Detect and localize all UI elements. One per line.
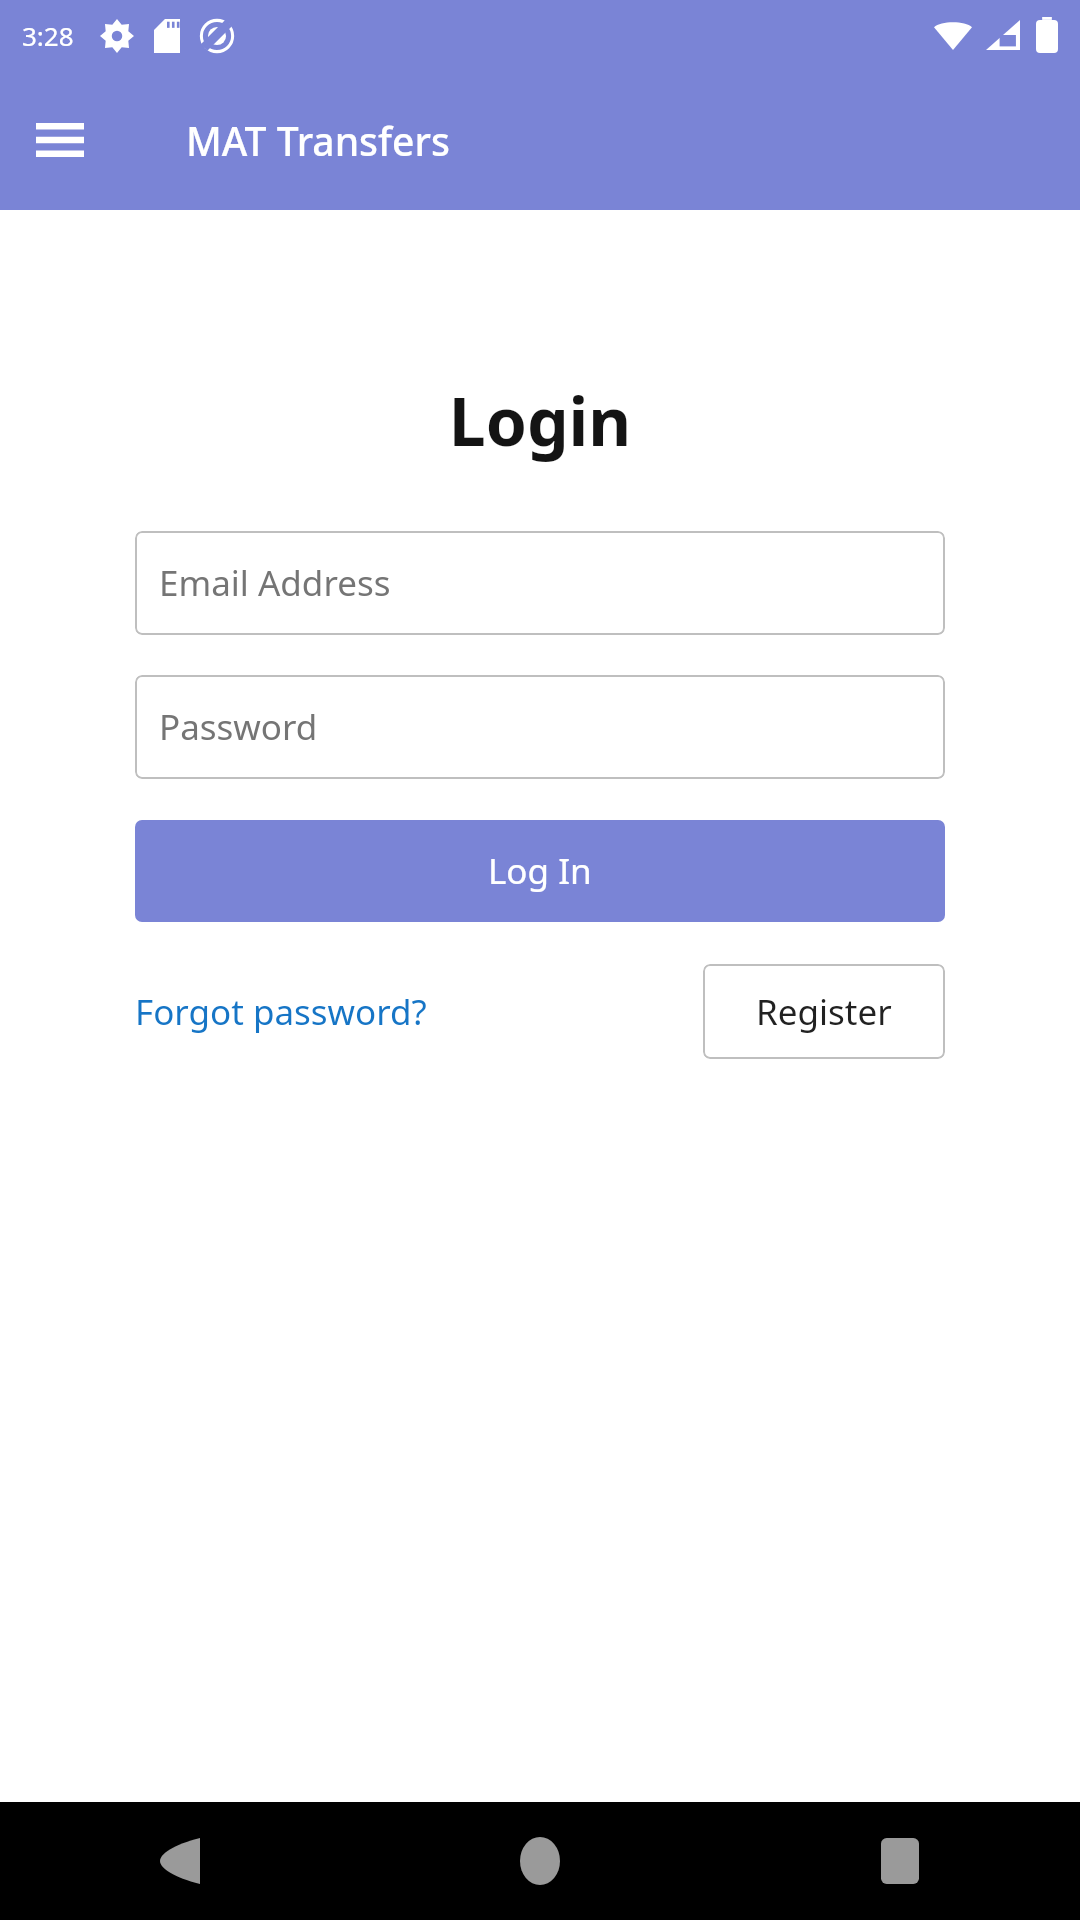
button[interactable]: Recent apps (720, 1802, 1080, 1920)
staticText: Register (756, 988, 892, 1036)
button[interactable]: Register (703, 964, 945, 1059)
staticText: 3:28 (22, 18, 74, 53)
staticText: Log In (488, 847, 592, 895)
staticText: Forgot password? (135, 988, 427, 1036)
button[interactable]: Open navigation menu (22, 102, 98, 178)
button[interactable]: Email Address (135, 531, 945, 635)
staticText: MAT Transfers (186, 114, 450, 167)
button[interactable]: Back (0, 1802, 360, 1920)
button[interactable]: Forgot password? (135, 980, 427, 1044)
staticText: Password (159, 703, 318, 751)
button[interactable]: Password (135, 675, 945, 779)
button[interactable]: Log In (135, 820, 945, 922)
button[interactable]: Home (360, 1802, 720, 1920)
staticText: Login (135, 375, 945, 465)
staticText: Email Address (159, 559, 391, 607)
